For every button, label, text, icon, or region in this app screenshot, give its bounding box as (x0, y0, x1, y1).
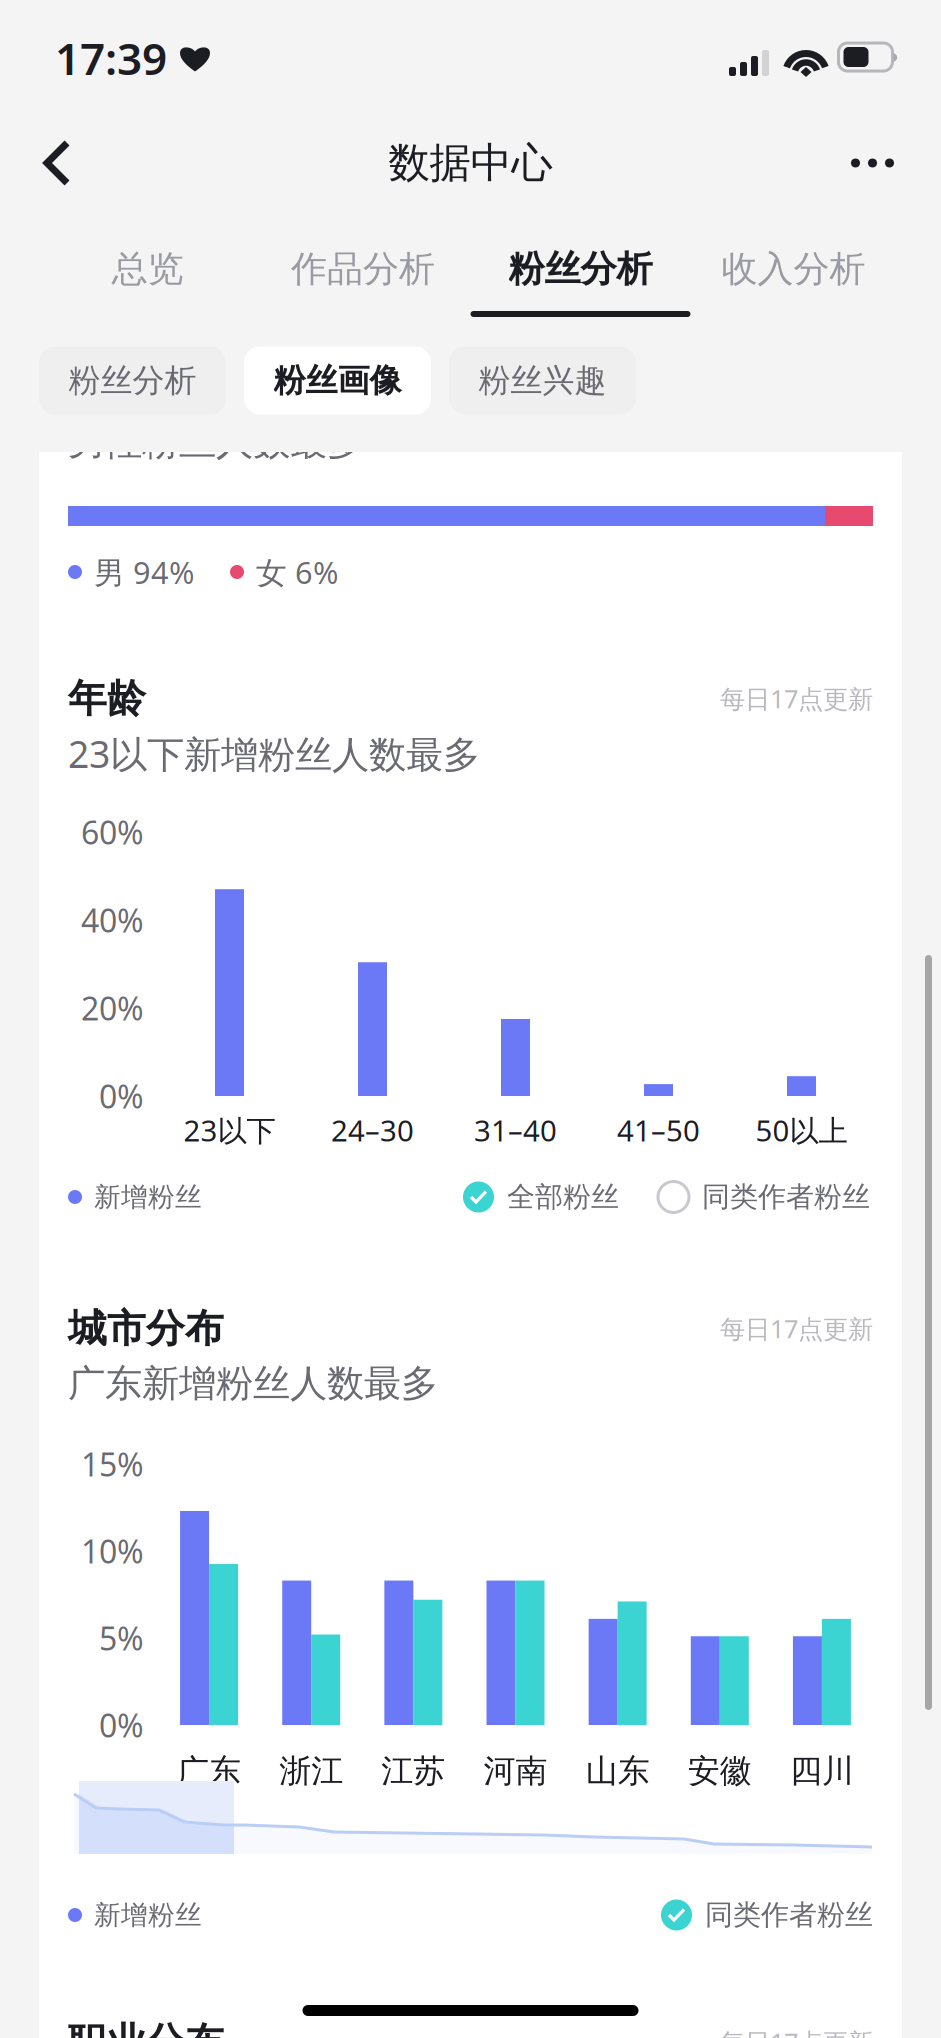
staticText: 23以下 (183, 1110, 275, 1149)
staticText: 山东 (586, 1751, 650, 1791)
staticText: 每日17点更新 (720, 2025, 873, 2038)
staticText: 60% (81, 811, 144, 853)
staticText: 新增粉丝 (94, 1181, 202, 1213)
button[interactable]: 总览 (40, 218, 255, 317)
button[interactable]: 粉丝兴趣 (449, 346, 636, 414)
staticText: 河南 (483, 1751, 547, 1791)
staticText: 江苏 (381, 1751, 445, 1791)
staticText: 数据中心 (388, 138, 552, 188)
staticText: 女 6% (256, 552, 338, 592)
staticText: 同类作者粉丝 (705, 1898, 873, 1932)
staticText: 作品分析 (291, 247, 435, 291)
staticText: 同类作者粉丝 (702, 1180, 870, 1214)
staticText: 17:39 (55, 29, 167, 87)
button[interactable]: 粉丝画像 (244, 346, 431, 414)
staticText: 粉丝画像 (273, 361, 401, 400)
staticText: 10% (81, 1530, 144, 1572)
staticText: 24–30 (331, 1110, 414, 1149)
staticText: 15% (81, 1443, 144, 1485)
staticText: 41–50 (617, 1110, 700, 1149)
staticText: 40% (81, 899, 144, 941)
staticText: 50以上 (755, 1110, 847, 1149)
staticText: 全部粉丝 (507, 1180, 619, 1214)
staticText: 总览 (112, 247, 184, 291)
staticText: 0% (99, 1704, 144, 1746)
button[interactable]: 作品分析 (255, 218, 470, 317)
staticText: 安徽 (688, 1751, 752, 1791)
button[interactable]: 更多 (811, 116, 922, 209)
staticText: 每日17点更新 (720, 682, 873, 715)
staticText: 广东新增粉丝人数最多 (68, 1361, 438, 1406)
staticText: 20% (81, 987, 144, 1029)
staticText: 男 94% (94, 552, 194, 592)
button[interactable]: 同类作者粉丝 (658, 1180, 870, 1214)
staticText: 收入分析 (721, 247, 865, 291)
staticText: 粉丝兴趣 (478, 361, 606, 400)
staticText: 23以下新增粉丝人数最多 (68, 729, 480, 778)
staticText: 广东 (177, 1751, 241, 1791)
button[interactable]: 同类作者粉丝 (661, 1898, 873, 1932)
staticText: 城市分布 (68, 1305, 224, 1352)
staticText: 粉丝分析 (508, 247, 652, 291)
staticText: 浙江 (279, 1751, 343, 1791)
button[interactable]: 收入分析 (686, 218, 901, 317)
staticText: 男性粉丝人数最多 (68, 419, 364, 465)
staticText: 职业分布 (68, 2018, 224, 2038)
button[interactable]: 全部粉丝 (463, 1180, 619, 1214)
staticText: 5% (99, 1617, 144, 1659)
button[interactable]: 粉丝分析 (470, 218, 686, 317)
button[interactable]: 返回 (19, 114, 103, 212)
button[interactable]: 粉丝分析 (39, 346, 226, 414)
staticText: 31–40 (474, 1110, 557, 1149)
staticText: 每日17点更新 (720, 1312, 873, 1345)
staticText: 新增粉丝 (94, 1899, 202, 1931)
staticText: 四川 (790, 1751, 854, 1791)
staticText: 0% (99, 1075, 144, 1117)
staticText: 粉丝分析 (68, 361, 196, 400)
staticText: 年龄 (68, 675, 146, 722)
